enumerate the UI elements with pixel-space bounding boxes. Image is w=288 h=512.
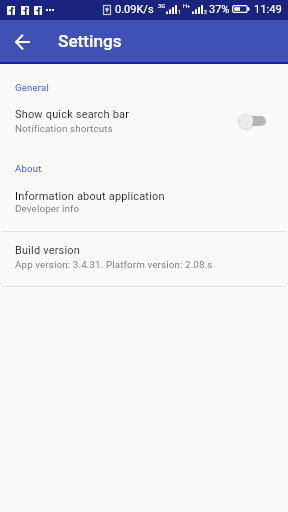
staticText: Build version	[15, 244, 80, 257]
staticText: About	[15, 163, 42, 174]
staticText: Notification shortcuts	[15, 123, 113, 134]
staticText: General	[15, 82, 50, 93]
staticText: 1	[178, 9, 181, 15]
button[interactable]: Back	[2, 22, 42, 62]
staticText: Developer info	[15, 203, 80, 214]
button[interactable]: Toggle quick search bar	[237, 111, 267, 131]
button[interactable]	[0, 100, 288, 146]
staticText: 2	[204, 9, 207, 15]
staticText: Information about application	[15, 190, 165, 203]
staticText: H+	[183, 3, 191, 10]
staticText: 3G	[158, 3, 165, 10]
staticText: 0.09K/s	[115, 3, 154, 16]
staticText: 11:49	[254, 3, 282, 16]
button[interactable]	[0, 239, 288, 286]
staticText: Show quick search bar	[15, 108, 130, 121]
staticText: App version: 3.4.31. Platform version: 2…	[15, 259, 213, 270]
staticText: 37%	[209, 3, 230, 16]
button[interactable]	[0, 184, 288, 228]
staticText: Settings	[58, 31, 122, 51]
